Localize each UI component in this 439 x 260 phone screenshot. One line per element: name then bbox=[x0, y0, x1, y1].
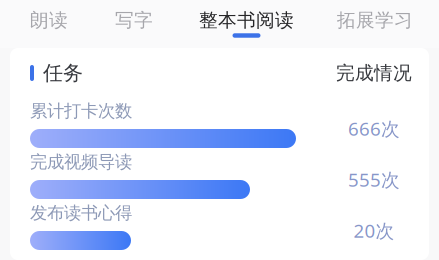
staticText: 20次 bbox=[353, 218, 394, 243]
staticText: 发布读书心得 bbox=[30, 202, 132, 224]
staticText: 555次 bbox=[348, 167, 400, 192]
staticText: 累计打卡次数 bbox=[30, 100, 132, 122]
staticText: 完成视频导读 bbox=[30, 151, 132, 173]
staticText: 任务 bbox=[43, 61, 83, 85]
button[interactable]: 拓展学习 bbox=[316, 3, 413, 45]
button[interactable]: 整本书阅读 bbox=[174, 3, 316, 45]
staticText: 写字 bbox=[115, 9, 153, 32]
staticText: 整本书阅读 bbox=[199, 9, 294, 32]
staticText: 拓展学习 bbox=[337, 9, 413, 32]
staticText: 666次 bbox=[348, 116, 400, 141]
staticText: 完成情况 bbox=[336, 61, 412, 84]
staticText: 朗读 bbox=[30, 9, 68, 32]
button[interactable]: 朗读 bbox=[0, 3, 92, 45]
button[interactable]: 写字 bbox=[92, 3, 174, 45]
